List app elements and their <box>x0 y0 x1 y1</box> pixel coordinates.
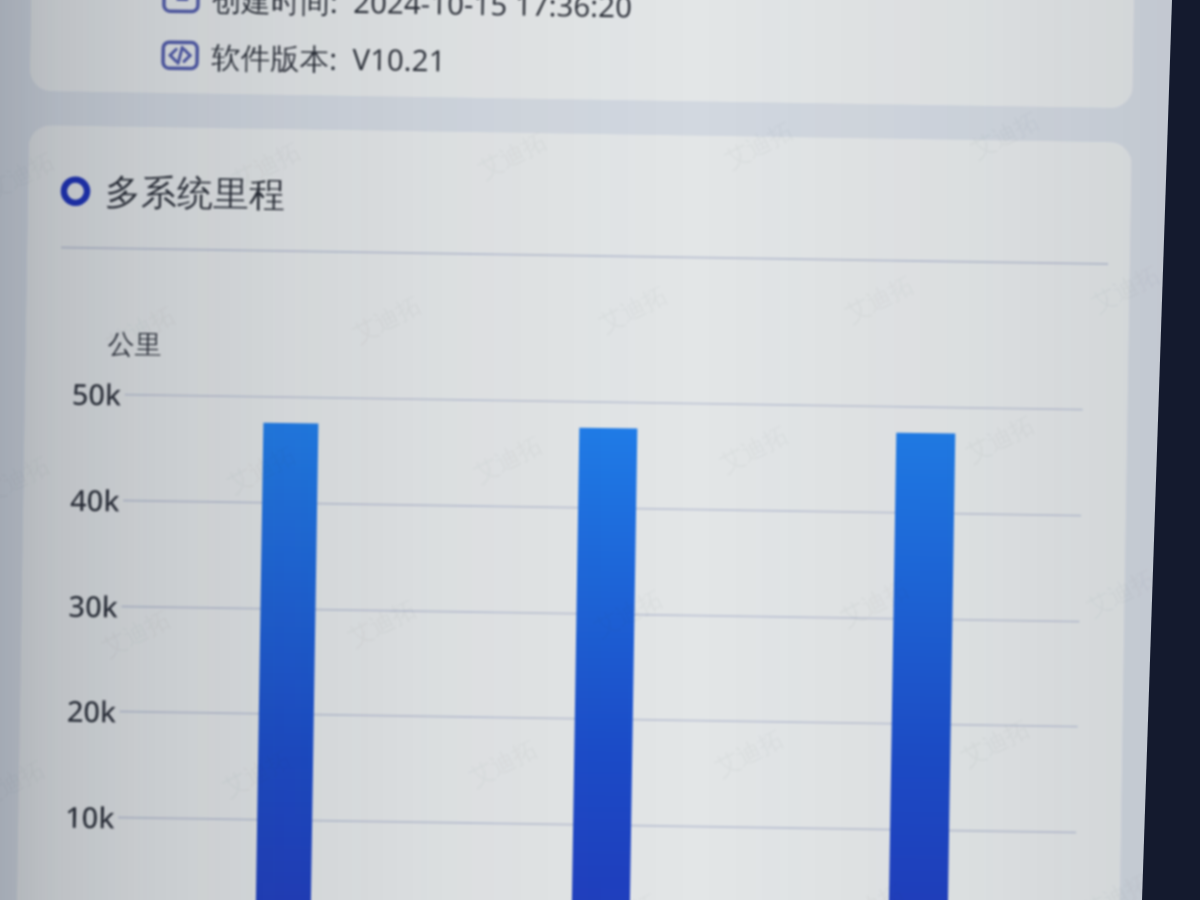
staticText: 软件版本: V10.21 <box>211 36 446 79</box>
staticText: 艾迪拓 <box>966 105 1044 166</box>
staticText: 10k <box>65 797 115 836</box>
button[interactable]: 多系统里程 <box>27 136 1132 261</box>
staticText: 艾迪拓 <box>473 125 552 186</box>
staticText: 艾迪拓 <box>961 408 1039 470</box>
staticText: 艾迪拓 <box>831 876 909 900</box>
staticText: 艾迪拓 <box>0 145 59 207</box>
staticText: 艾迪拓 <box>343 593 421 654</box>
staticText: 艾迪拓 <box>101 299 180 360</box>
staticText: 创建时间: 2024-10-15 17:36:20 <box>212 0 632 25</box>
staticText: 多系统里程 <box>105 169 285 217</box>
staticText: 艾迪拓 <box>218 743 296 804</box>
staticText: 艾迪拓 <box>835 573 914 634</box>
staticText: 艾迪拓 <box>1077 866 1155 900</box>
staticText: 艾迪拓 <box>222 439 301 500</box>
staticText: 艾迪拓 <box>1086 258 1165 320</box>
staticText: 50k <box>71 374 122 413</box>
staticText: 公里 <box>107 327 162 362</box>
staticText: 艾迪拓 <box>227 135 306 196</box>
staticText: 艾迪拓 <box>719 115 798 176</box>
staticText: 艾迪拓 <box>0 449 55 511</box>
button[interactable]: 创建时间: 2024-10-15 17:36:20 <box>30 0 1137 108</box>
staticText: 艾迪拓 <box>0 753 50 814</box>
staticText: 艾迪拓 <box>97 603 175 664</box>
staticText: 40k <box>70 480 120 519</box>
staticText: 30k <box>68 586 119 625</box>
staticText: 艾迪拓 <box>584 887 663 900</box>
staticText: 艾迪拓 <box>589 583 668 644</box>
staticText: 艾迪拓 <box>1081 562 1160 624</box>
staticText: 艾迪拓 <box>956 712 1035 774</box>
staticText: 20k <box>66 691 117 730</box>
